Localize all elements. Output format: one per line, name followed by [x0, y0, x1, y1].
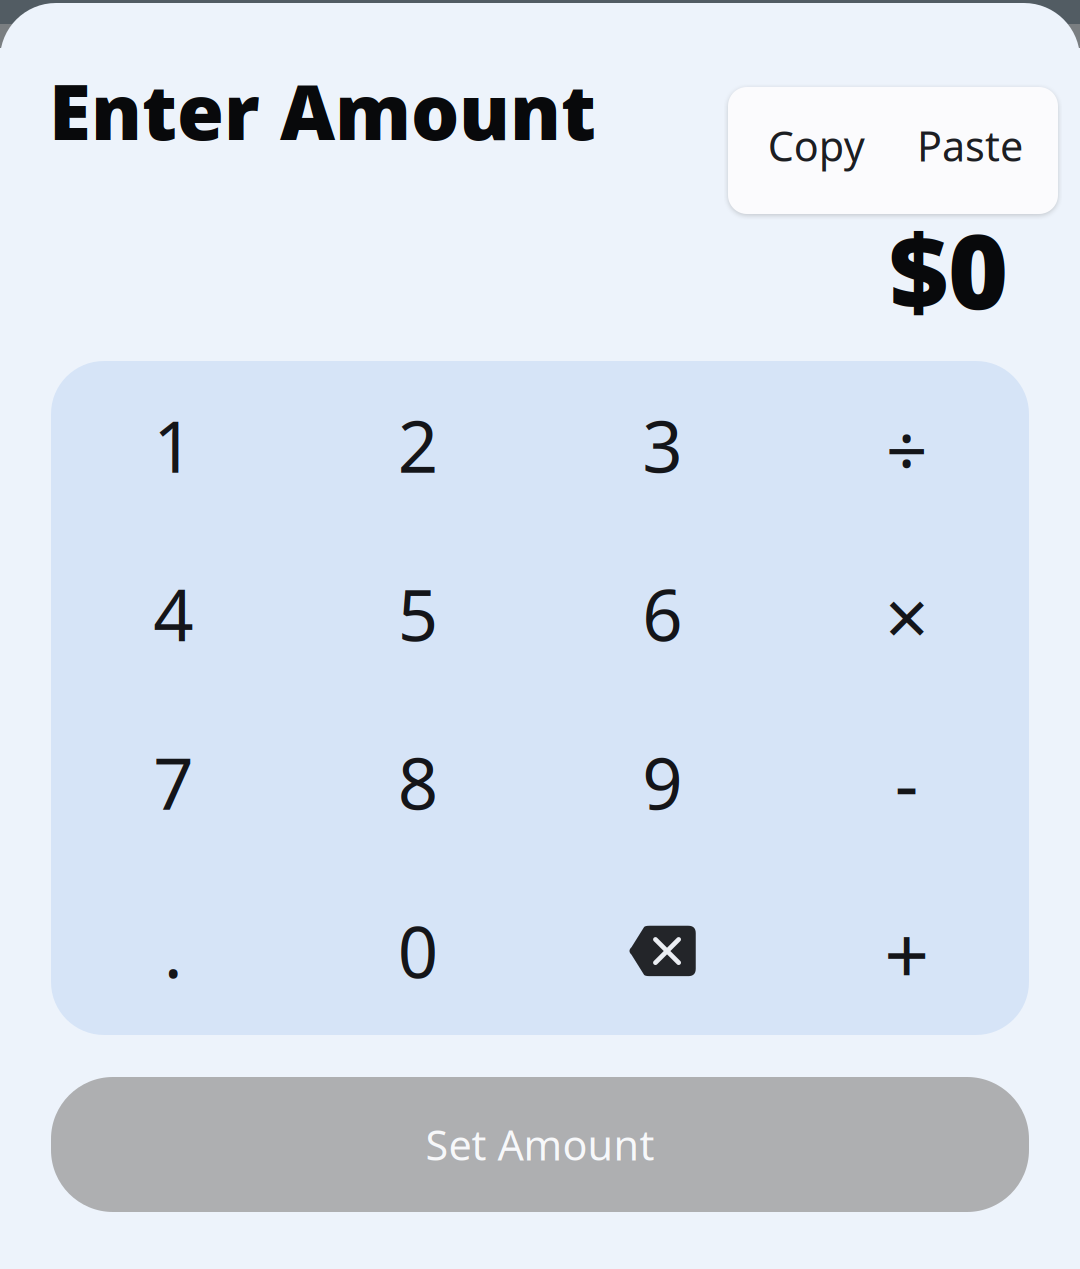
staticText: ×	[885, 564, 929, 667]
staticText: 5	[398, 567, 438, 661]
button[interactable]: 2	[295, 361, 540, 529]
button[interactable]: Paste	[887, 87, 1052, 214]
staticText: -	[895, 734, 919, 831]
staticText: 3	[642, 398, 682, 492]
staticText: ÷	[886, 400, 928, 497]
button[interactable]: 8	[295, 698, 540, 866]
button[interactable]: 9	[540, 698, 784, 866]
staticText: 6	[642, 567, 682, 661]
button[interactable]: ÷	[784, 364, 1029, 533]
button[interactable]: .	[51, 866, 295, 1035]
button[interactable]: ×	[784, 531, 1029, 700]
staticText: .	[164, 904, 183, 998]
button[interactable]: +	[784, 869, 1029, 1038]
staticText: +	[884, 901, 929, 1006]
staticText: 4	[153, 567, 193, 661]
button[interactable]: Set Amount	[51, 1077, 1029, 1212]
staticText: 7	[153, 735, 193, 829]
staticText: 2	[398, 398, 438, 492]
staticText: Enter Amount	[49, 60, 596, 161]
button[interactable]: Copy	[734, 87, 899, 214]
button[interactable]: 0	[295, 866, 540, 1035]
button[interactable]: Delete	[539, 867, 784, 1035]
staticText: 1	[153, 398, 193, 492]
staticText: 9	[642, 735, 682, 829]
staticText: Paste	[917, 118, 1023, 173]
button[interactable]: 6	[540, 529, 784, 698]
button[interactable]: 1	[51, 361, 295, 529]
button[interactable]: 4	[51, 529, 295, 698]
staticText: Copy	[768, 118, 865, 173]
button[interactable]: -	[784, 698, 1029, 867]
button[interactable]: 7	[51, 698, 295, 866]
staticText: Set Amount	[425, 1117, 654, 1172]
staticText: 0	[398, 904, 438, 998]
button[interactable]: 3	[540, 361, 784, 529]
staticText: 8	[398, 735, 438, 829]
staticText: $0	[889, 201, 1008, 338]
button[interactable]: 5	[295, 529, 540, 698]
